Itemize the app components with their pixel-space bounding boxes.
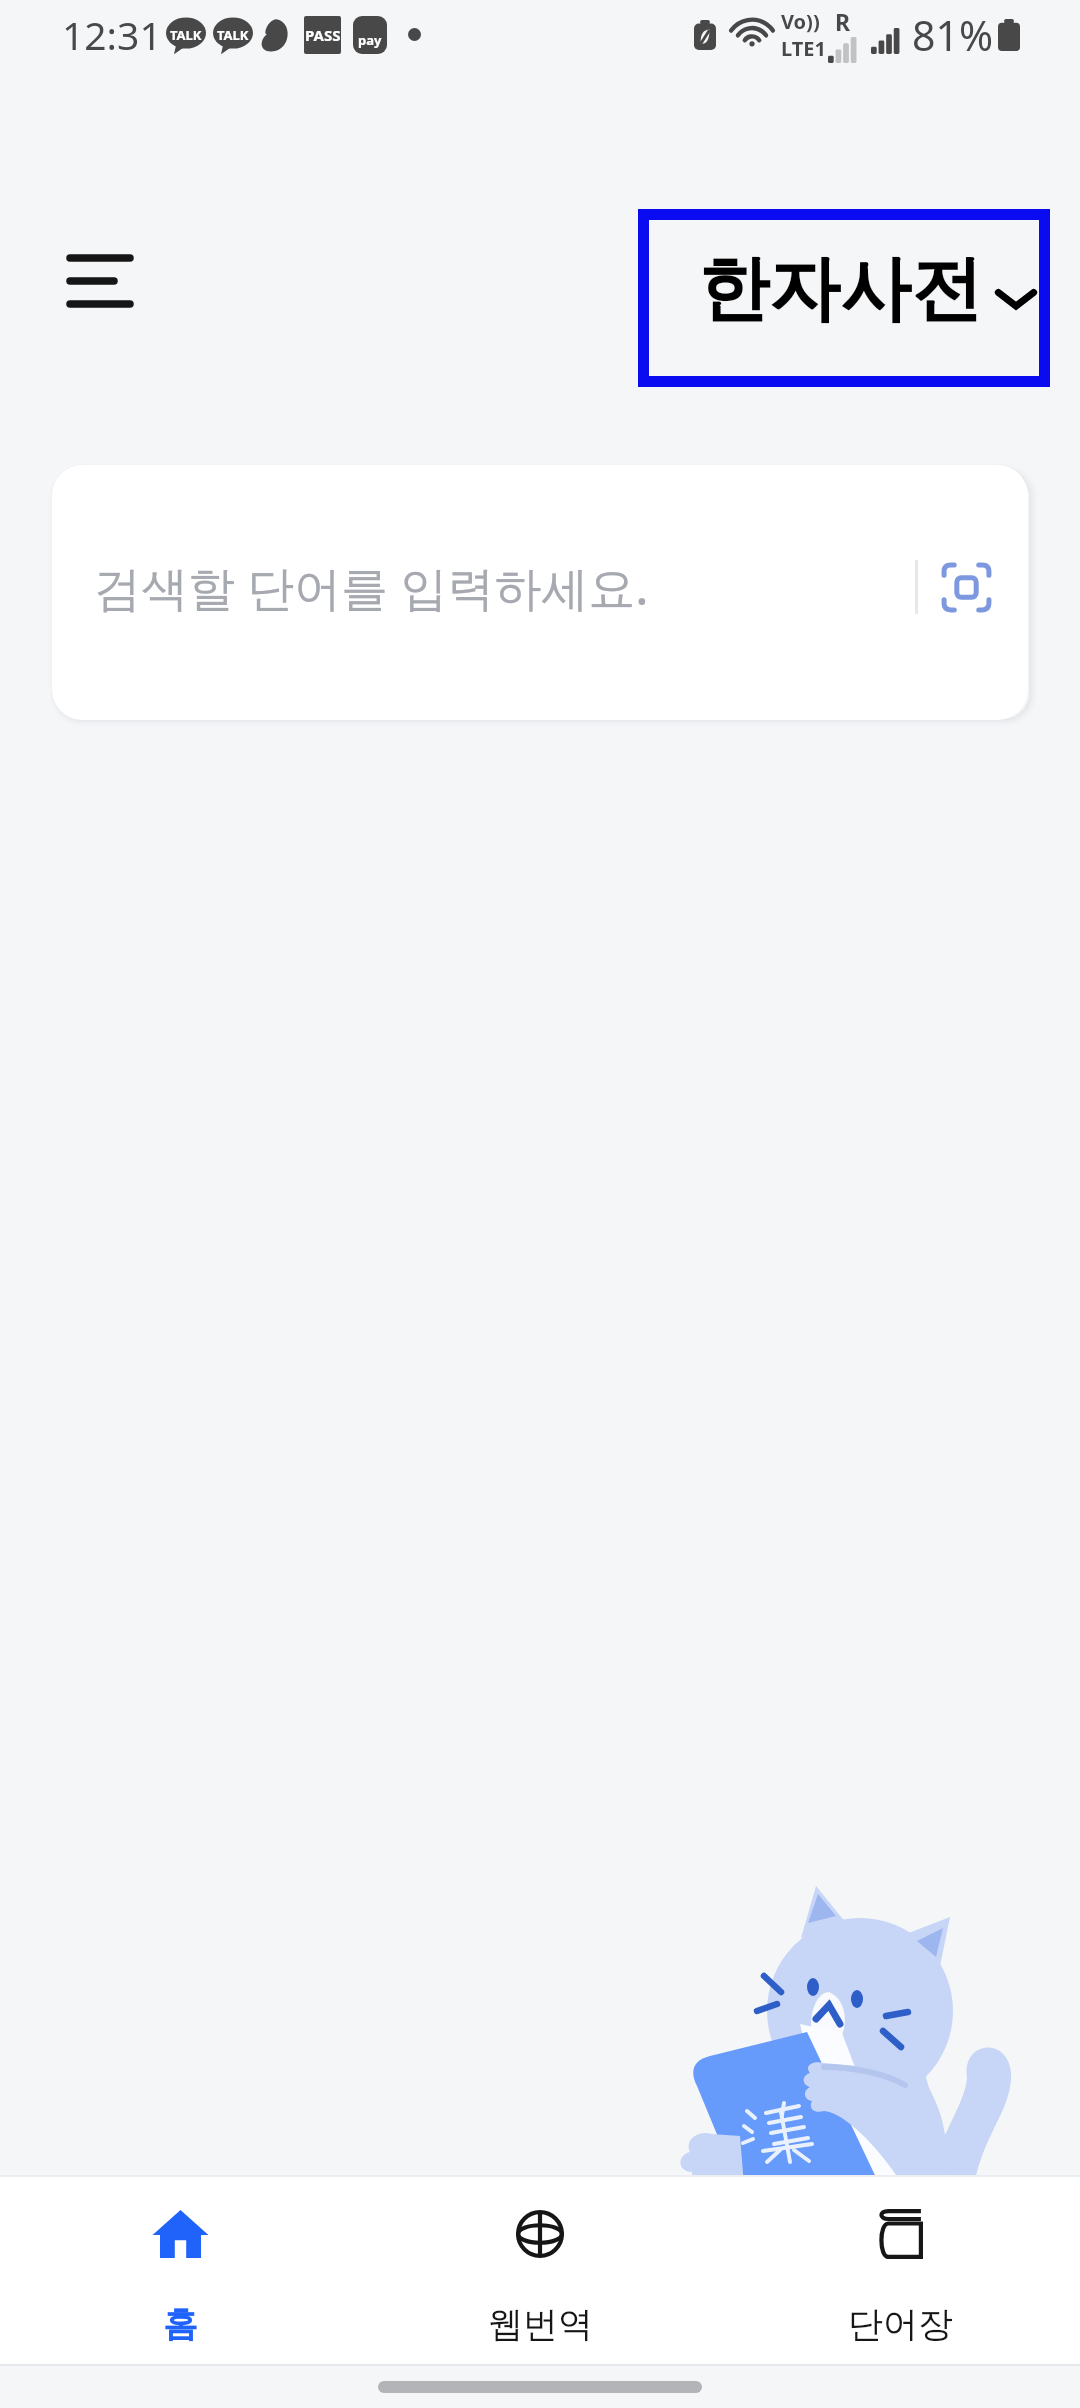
- staticText: pay: [358, 31, 382, 49]
- button[interactable]: Scan text: [933, 554, 999, 620]
- button[interactable]: 검색할 단어를 입력하세요.: [52, 465, 1028, 720]
- button[interactable]: 한자사전: [638, 209, 1050, 387]
- button[interactable]: 단어장: [720, 2177, 1080, 2364]
- staticText: 한자사전: [698, 245, 982, 334]
- staticText: Vo)): [781, 8, 820, 35]
- staticText: R: [835, 6, 851, 37]
- staticText: 81%: [912, 7, 993, 63]
- button[interactable]: Menu: [40, 230, 126, 316]
- staticText: 웹번역: [488, 2302, 593, 2346]
- staticText: TALK: [170, 26, 202, 44]
- staticText: 홈: [163, 2302, 198, 2346]
- staticText: PASS: [305, 25, 341, 45]
- button[interactable]: 홈: [0, 2177, 360, 2364]
- staticText: LTE1: [781, 35, 826, 62]
- staticText: 12:31: [62, 8, 162, 61]
- staticText: TALK: [217, 26, 249, 44]
- button[interactable]: 웹번역: [360, 2177, 720, 2364]
- staticText: 검색할 단어를 입력하세요.: [94, 555, 915, 619]
- staticText: 단어장: [848, 2302, 953, 2346]
